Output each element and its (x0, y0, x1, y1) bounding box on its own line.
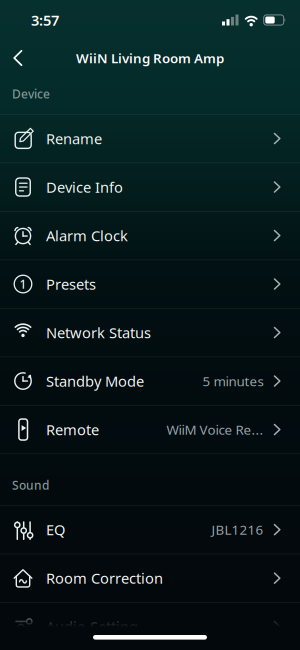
button[interactable]: Rename (0, 115, 300, 163)
staticText: Network Status (46, 323, 151, 342)
button[interactable]: Device Info (0, 163, 300, 212)
staticText: Audio Setting... (46, 617, 150, 636)
button[interactable]: EQ (0, 506, 300, 554)
button[interactable]: Network Status (0, 309, 300, 357)
button[interactable]: Audio Setting... (0, 603, 300, 650)
staticText: Alarm Clock (46, 226, 128, 245)
staticText: WiiM Voice Re... (166, 421, 263, 438)
button[interactable]: Room Correction (0, 554, 300, 603)
staticText: JBL1216 (211, 521, 263, 538)
staticText: Rename (46, 129, 102, 148)
staticText: 5 minutes (202, 372, 263, 390)
button[interactable]: Alarm Clock (0, 212, 300, 260)
button[interactable]: Back (0, 42, 23, 74)
staticText: WiiN Living Room Amp (76, 49, 224, 67)
button[interactable]: Standby Mode (0, 357, 300, 406)
button[interactable]: Remote (0, 406, 300, 454)
staticText: Standby Mode (46, 371, 144, 391)
staticText: Device (12, 86, 50, 102)
staticText: EQ (46, 520, 65, 539)
staticText: Device Info (46, 177, 123, 197)
staticText: 3:57 (31, 10, 59, 30)
button[interactable]: 1 (0, 260, 300, 309)
staticText: 1 (19, 276, 26, 292)
staticText: Room Correction (46, 568, 163, 588)
staticText: Remote (46, 420, 99, 439)
staticText: Sound (12, 477, 49, 493)
staticText: Presets (46, 274, 96, 294)
